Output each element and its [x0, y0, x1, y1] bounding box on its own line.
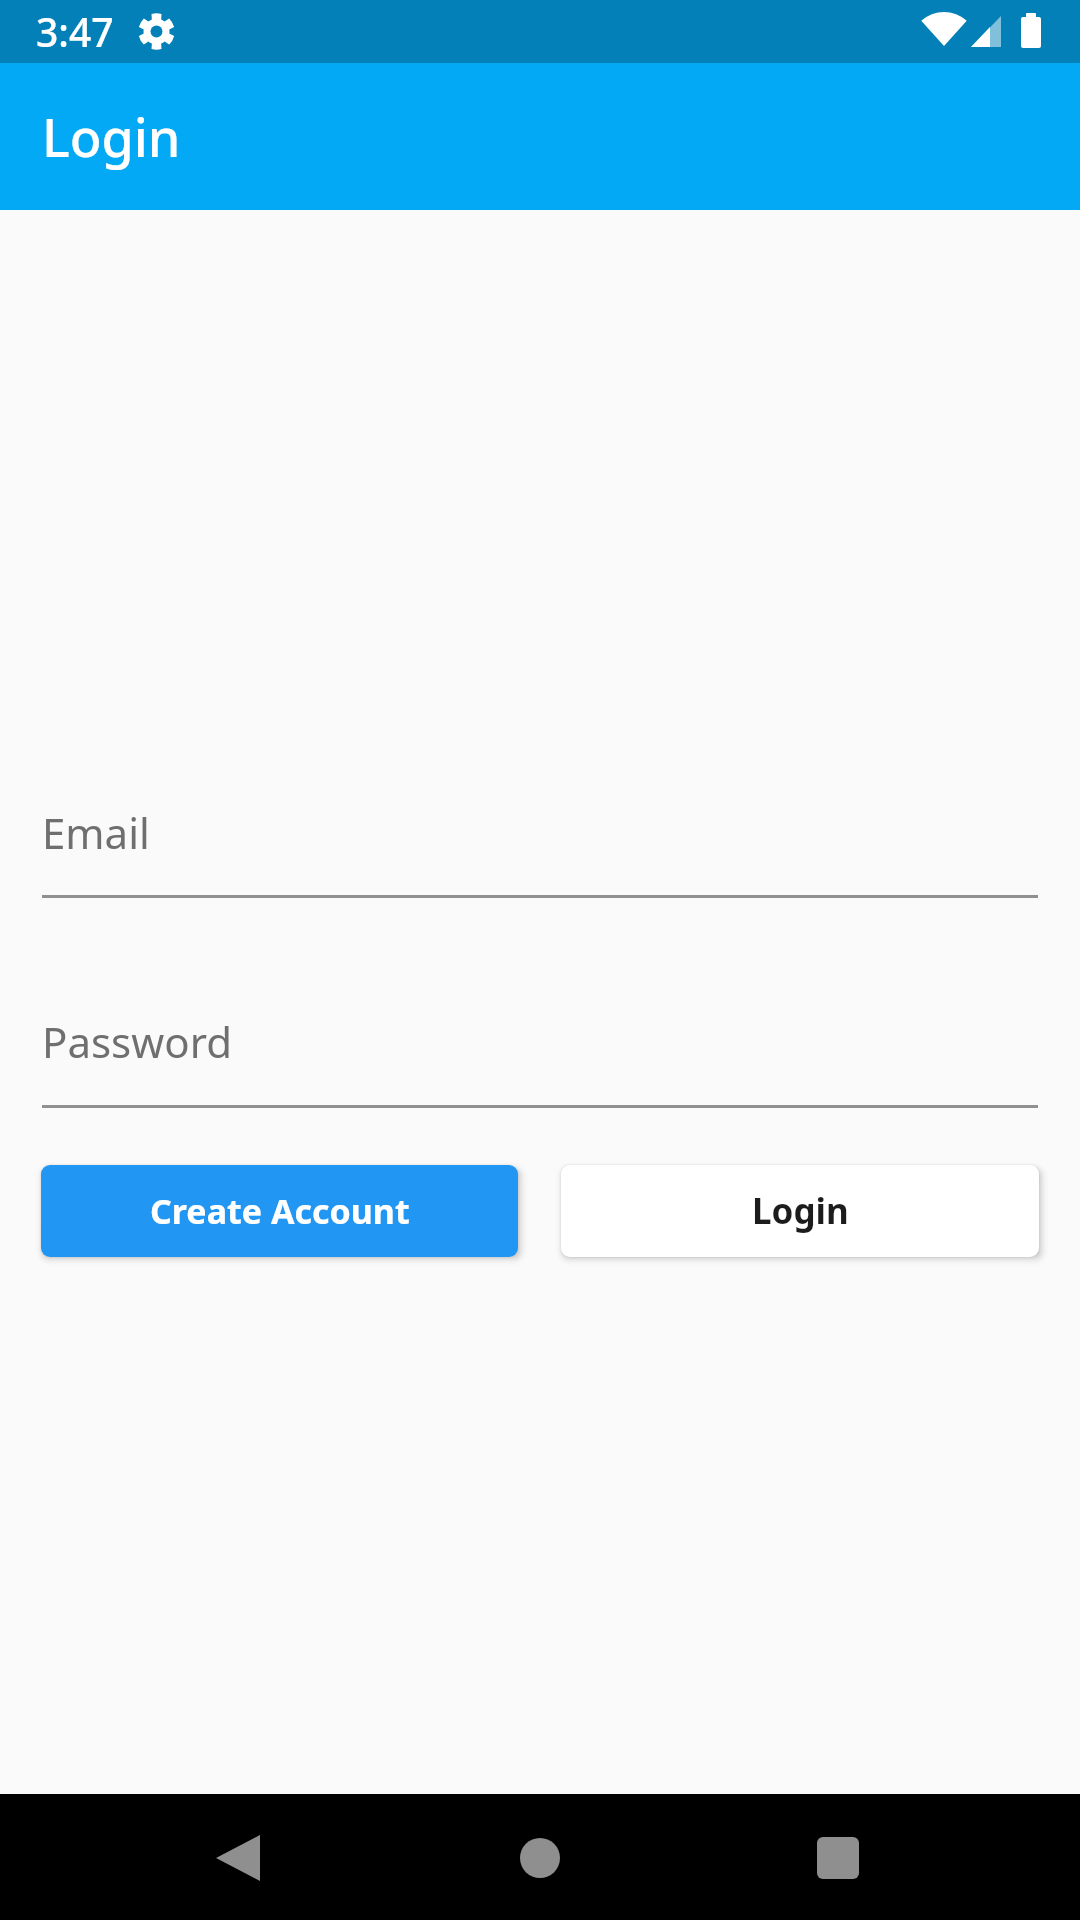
- staticText: Login: [42, 101, 181, 172]
- staticText: Password: [42, 1013, 232, 1070]
- button[interactable]: [520, 1838, 560, 1878]
- staticText: Login: [752, 1187, 849, 1235]
- button[interactable]: Password: [42, 990, 1038, 1108]
- staticText: 3:47: [36, 5, 114, 58]
- staticText: Email: [42, 804, 150, 861]
- staticText: Create Account: [150, 1188, 410, 1234]
- button[interactable]: [216, 1835, 260, 1881]
- button[interactable]: Login: [561, 1165, 1039, 1257]
- button[interactable]: [817, 1837, 859, 1879]
- button[interactable]: Email: [42, 780, 1038, 898]
- button[interactable]: Create Account: [41, 1165, 518, 1257]
